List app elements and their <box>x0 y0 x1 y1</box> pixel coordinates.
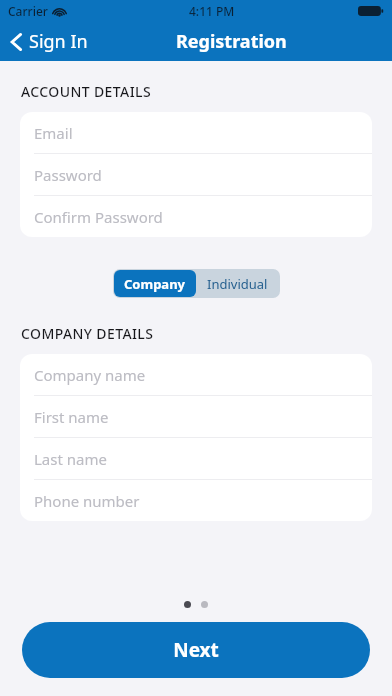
staticText: ACCOUNT DETAILS <box>21 82 152 101</box>
staticText: Confirm Password <box>34 207 163 227</box>
staticText: Company <box>124 275 186 293</box>
staticText: Phone number <box>34 491 140 511</box>
staticText: COMPANY DETAILS <box>21 324 154 343</box>
button[interactable]: Sign In <box>0 25 98 58</box>
staticText: Email <box>34 123 73 143</box>
staticText: Sign In <box>29 29 88 54</box>
staticText: Individual <box>207 275 268 293</box>
staticText: Last name <box>34 449 107 469</box>
button[interactable]: Email <box>20 112 372 153</box>
staticText: Next <box>173 637 219 663</box>
button[interactable]: Company name <box>20 354 372 395</box>
staticText: Carrier <box>8 3 48 19</box>
staticText: First name <box>34 407 109 427</box>
button[interactable]: Last name <box>20 438 372 479</box>
button[interactable]: First name <box>20 396 372 437</box>
staticText: Registration <box>176 29 287 54</box>
button[interactable]: Next <box>22 622 370 678</box>
button[interactable]: Password <box>20 154 372 195</box>
button[interactable]: Individual <box>196 270 279 297</box>
button[interactable]: Company <box>114 270 196 297</box>
button[interactable]: Confirm Password <box>20 196 372 237</box>
staticText: 4:11 PM <box>189 3 235 19</box>
staticText: Company name <box>34 365 146 385</box>
staticText: Password <box>34 165 102 185</box>
button[interactable]: Phone number <box>20 480 372 521</box>
